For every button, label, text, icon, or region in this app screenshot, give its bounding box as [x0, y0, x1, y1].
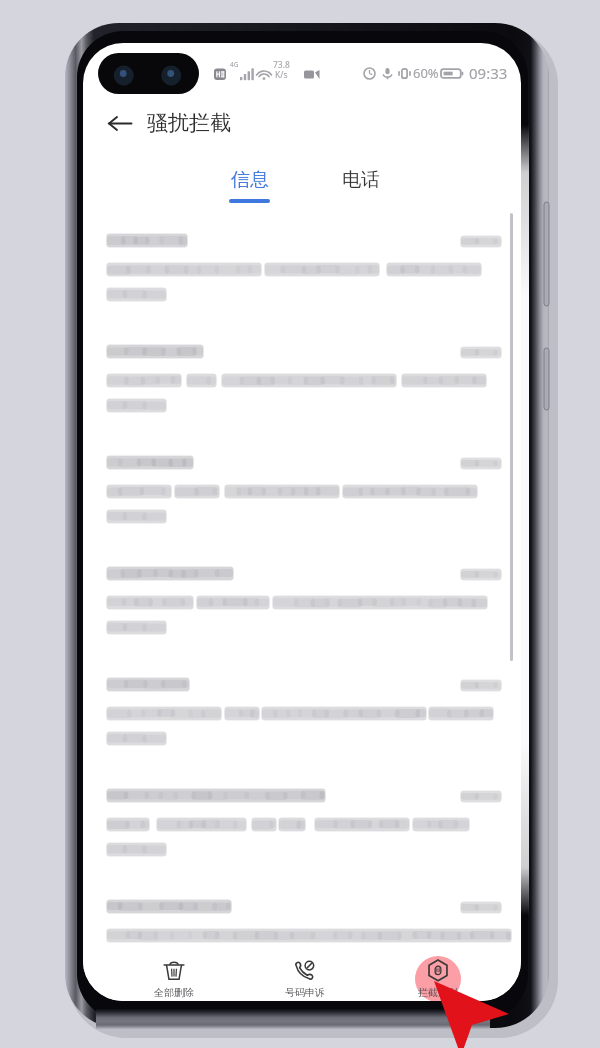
button[interactable]: 电话 — [331, 151, 391, 213]
staticText: K/s — [275, 69, 288, 81]
button[interactable] — [83, 334, 521, 445]
button[interactable] — [83, 778, 521, 889]
button[interactable]: 号码申诉 — [257, 947, 353, 1001]
staticText: 73.8 — [273, 59, 290, 71]
button[interactable] — [83, 223, 521, 334]
staticText: 拦截规则 — [418, 986, 458, 999]
button[interactable]: Back — [99, 103, 139, 143]
staticText: 骚扰拦截 — [147, 110, 231, 136]
button[interactable] — [83, 445, 521, 556]
staticText: 电话 — [342, 168, 380, 192]
staticText: 号码申诉 — [285, 986, 325, 999]
button[interactable]: 拦截规则 — [390, 947, 486, 1001]
button[interactable] — [83, 556, 521, 667]
staticText: 4G — [230, 60, 239, 69]
staticText: 全部删除 — [154, 986, 194, 999]
button[interactable] — [83, 667, 521, 778]
button[interactable]: 信息 — [219, 151, 279, 213]
staticText: 信息 — [231, 168, 269, 192]
button[interactable]: 全部删除 — [126, 947, 222, 1001]
button[interactable] — [83, 889, 521, 947]
staticText: 09:33 — [469, 63, 508, 83]
staticText: 60% — [413, 64, 439, 82]
